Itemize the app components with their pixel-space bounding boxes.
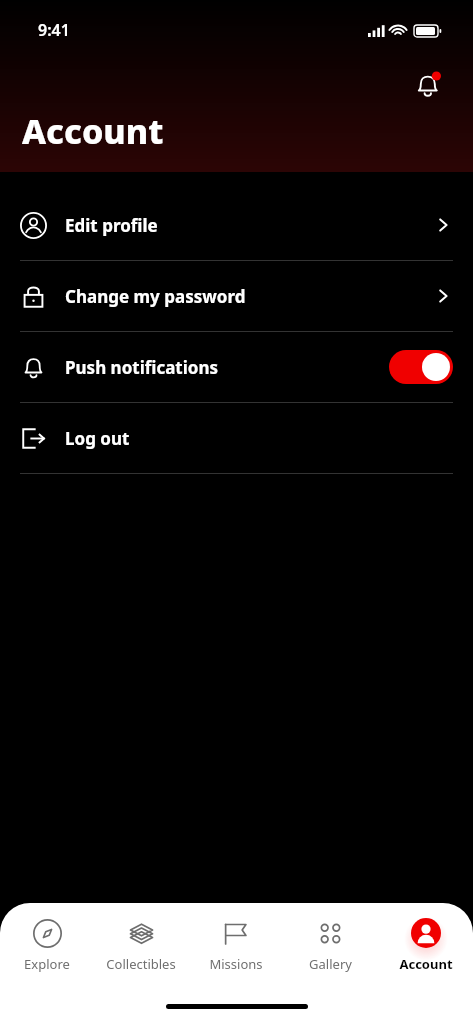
staticText: Edit profile: [65, 214, 158, 237]
staticText: Missions: [209, 955, 263, 973]
staticText: 9:41: [38, 19, 70, 41]
staticText: Explore: [24, 955, 70, 973]
button[interactable]: Collectibles: [94, 903, 188, 983]
staticText: Change my password: [65, 285, 246, 308]
staticText: Account: [399, 955, 453, 973]
button[interactable]: Push notifications: [0, 332, 473, 402]
button[interactable]: Gallery: [283, 903, 378, 983]
staticText: Log out: [65, 427, 130, 450]
staticText: Push notifications: [65, 356, 219, 379]
button[interactable]: Edit profile: [0, 190, 473, 260]
staticText: Gallery: [309, 955, 352, 973]
button[interactable]: Account: [378, 903, 473, 983]
staticText: Account: [22, 108, 164, 154]
button[interactable]: Missions: [188, 903, 283, 983]
button[interactable]: Push notifications toggle: [389, 350, 453, 384]
button[interactable]: Notifications: [405, 63, 453, 111]
staticText: Collectibles: [106, 955, 176, 973]
button[interactable]: Log out: [0, 403, 473, 473]
button[interactable]: Explore: [0, 903, 94, 983]
button[interactable]: Change my password: [0, 261, 473, 331]
